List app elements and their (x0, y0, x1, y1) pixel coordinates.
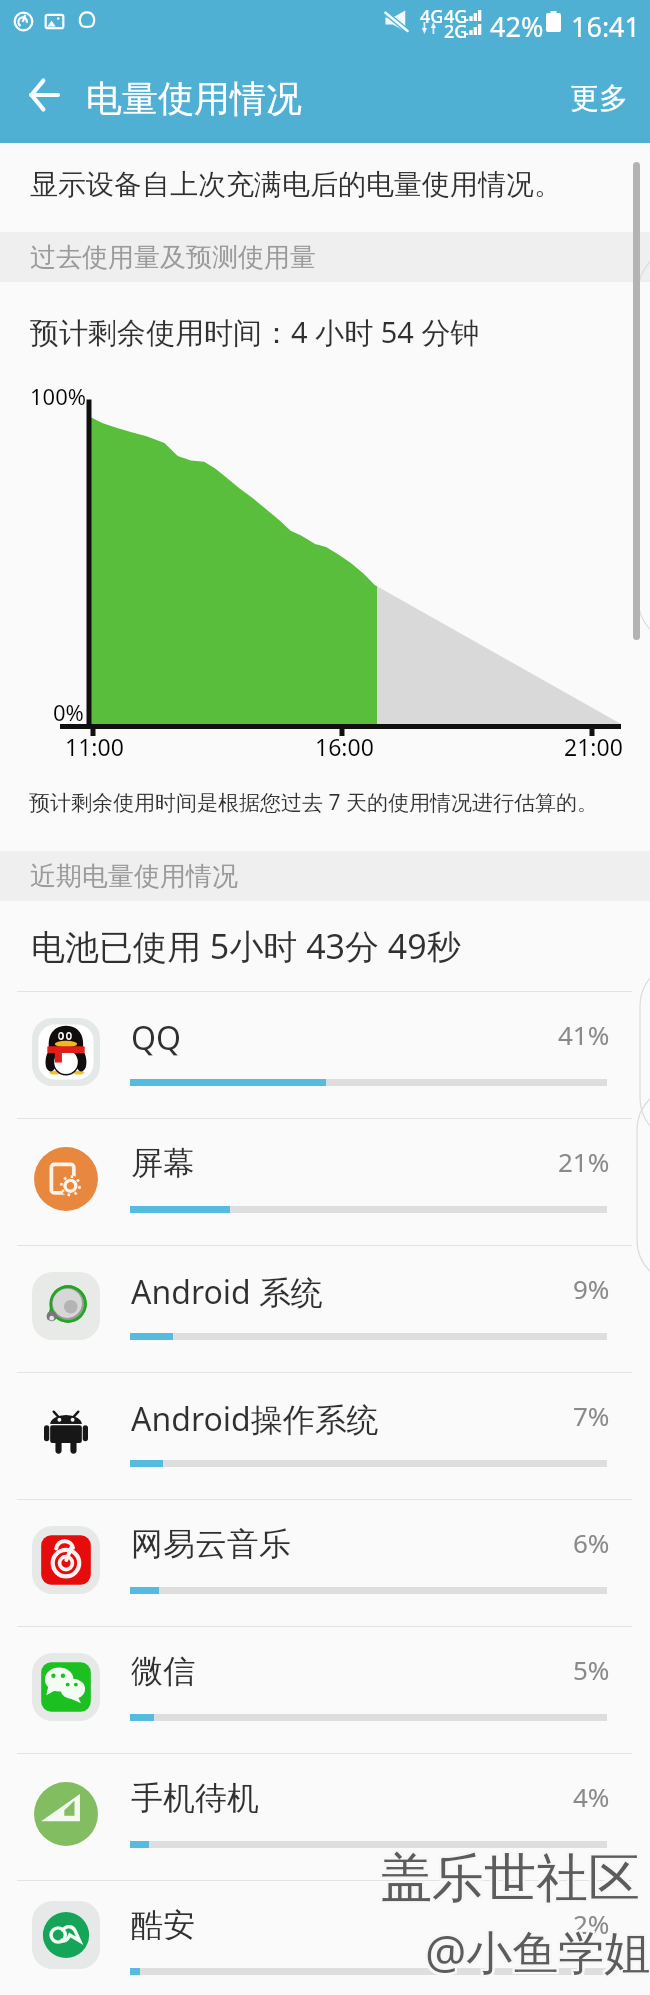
staticText: 手机待机 (131, 1778, 259, 1818)
button[interactable]: 更多 (548, 62, 650, 135)
staticText: 4G (444, 4, 468, 29)
button[interactable]: QQ (0, 991, 650, 1118)
staticText: 5% (573, 1652, 610, 1687)
staticText: 2G (444, 19, 468, 44)
staticText: 过去使用量及预测使用量 (30, 241, 316, 274)
staticText: 16:00 (315, 731, 374, 762)
button[interactable]: Android 系统 (0, 1245, 650, 1372)
staticText: 盖乐世社区 (382, 1848, 642, 1914)
button[interactable]: 屏幕 (0, 1118, 650, 1245)
staticText: 电池已使用 5小时 43分 49秒 (31, 923, 461, 969)
staticText: 预计剩余使用时间：4 小时 54 分钟 (30, 312, 480, 352)
staticText: 盖乐世社区 (382, 1846, 642, 1912)
staticText: @小鱼学姐 (423, 1918, 649, 1981)
staticText: 盖乐世社区 (380, 1846, 640, 1912)
staticText: Android 系统 (131, 1270, 324, 1314)
staticText: 盖乐世社区 (378, 1846, 638, 1912)
staticText: 7% (573, 1398, 610, 1433)
staticText: 预计剩余使用时间是根据您过去 7 天的使用情况进行估算的。 (29, 788, 598, 817)
staticText: 2% (573, 1906, 610, 1941)
staticText: Android操作系统 (131, 1397, 379, 1441)
staticText: 近期电量使用情况 (30, 860, 238, 893)
staticText: 盖乐世社区 (378, 1844, 638, 1910)
staticText: 显示设备自上次充满电后的电量使用情况。 (30, 167, 562, 202)
staticText: 网易云音乐 (131, 1524, 291, 1564)
button[interactable]: Back (13, 64, 75, 126)
staticText: 盖乐世社区 (378, 1848, 638, 1914)
staticText: 9% (573, 1271, 610, 1306)
staticText: @小鱼学姐 (427, 1920, 650, 1983)
staticText: 6% (573, 1525, 610, 1560)
staticText: 酷安 (131, 1905, 195, 1945)
button[interactable]: 网易云音乐 (0, 1499, 650, 1626)
staticText: @小鱼学姐 (423, 1920, 649, 1983)
staticText: 41% (558, 1017, 610, 1052)
staticText: 屏幕 (131, 1143, 195, 1183)
staticText: 更多 (570, 80, 628, 117)
staticText: 4G (420, 4, 444, 29)
staticText: 4% (573, 1779, 610, 1814)
staticText: 盖乐世社区 (380, 1844, 640, 1910)
staticText: 100% (30, 381, 87, 411)
button[interactable]: 微信 (0, 1626, 650, 1753)
staticText: @小鱼学姐 (425, 1920, 650, 1983)
staticText: @小鱼学姐 (423, 1922, 649, 1985)
staticText: 42% (490, 8, 544, 45)
button[interactable]: 酷安 (0, 1880, 650, 1995)
staticText: 盖乐世社区 (380, 1848, 640, 1914)
staticText: @小鱼学姐 (427, 1918, 650, 1981)
staticText: 盖乐世社区 (382, 1844, 642, 1910)
staticText: 21:00 (564, 731, 623, 762)
button[interactable]: 手机待机 (0, 1753, 650, 1880)
staticText: 11:00 (65, 731, 124, 762)
staticText: QQ (131, 1016, 181, 1060)
button[interactable]: Android操作系统 (0, 1372, 650, 1499)
staticText: 21% (558, 1144, 610, 1179)
staticText: @小鱼学姐 (425, 1918, 650, 1981)
staticText: 电量使用情况 (86, 76, 302, 121)
staticText: 16:41 (571, 8, 641, 45)
staticText: @小鱼学姐 (427, 1922, 650, 1985)
staticText: 微信 (131, 1651, 195, 1691)
staticText: @小鱼学姐 (425, 1922, 650, 1985)
staticText: 0% (53, 697, 84, 727)
